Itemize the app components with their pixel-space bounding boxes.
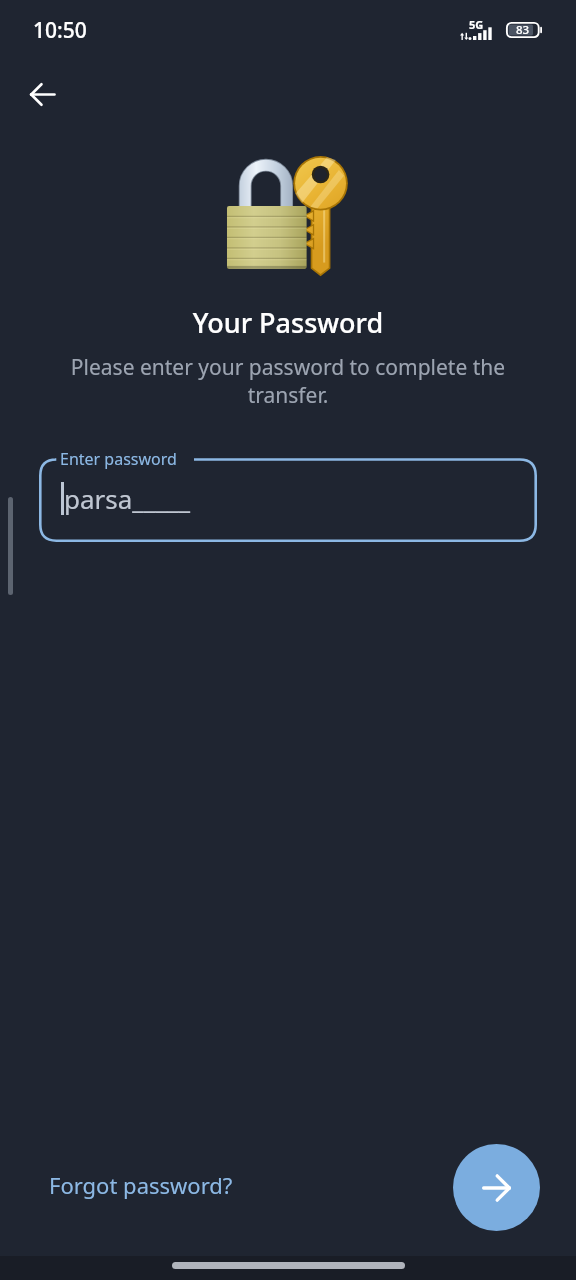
staticText: 83 (516, 22, 530, 38)
button[interactable]: Continue (453, 1144, 540, 1231)
staticText: 10:50 (33, 16, 87, 45)
button[interactable]: Enter password (39, 448, 537, 542)
staticText: Please enter your password to complete t… (62, 353, 514, 409)
staticText: 5G (469, 17, 484, 32)
staticText: parsa_____ (64, 481, 191, 516)
staticText: Your Password (0, 304, 576, 341)
button[interactable]: Back (18, 70, 66, 118)
staticText: Enter password (60, 448, 177, 470)
staticText: Forgot password? (49, 1170, 233, 1200)
button[interactable]: Forgot password? (40, 1162, 242, 1208)
